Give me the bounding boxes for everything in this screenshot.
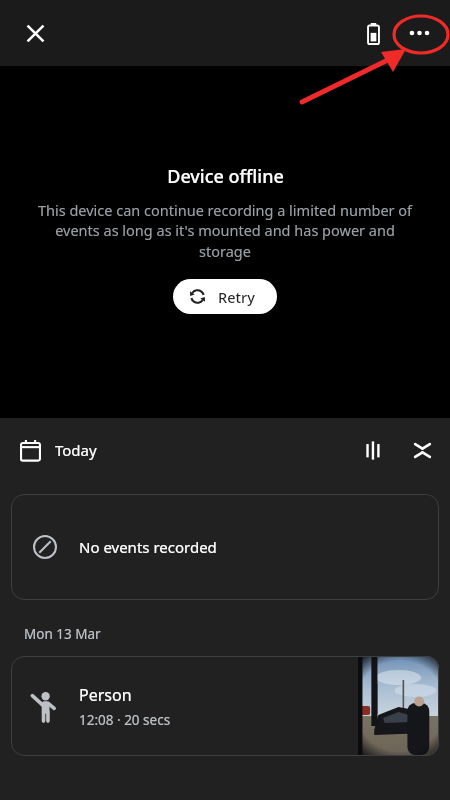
staticText: This device can continue recording a lim… [30,200,420,262]
staticText: Device offline [167,164,284,189]
staticText: Today [55,440,97,460]
button[interactable]: Retry [173,279,277,314]
staticText: Mon 13 Mar [24,625,101,643]
staticText: No events recorded [79,537,217,557]
staticText: Retry [218,287,255,307]
button[interactable]: Collapse [398,426,446,474]
button[interactable]: No events recorded [11,494,439,600]
staticText: 12:08 · 20 secs [79,711,171,729]
button[interactable]: More options [395,9,443,57]
button[interactable]: Person [11,656,439,756]
button[interactable]: Close [11,9,59,57]
staticText: Person [79,684,132,706]
button[interactable]: Timeline view [350,426,398,474]
button[interactable]: Today [0,418,350,482]
button[interactable]: Battery status [351,11,395,55]
